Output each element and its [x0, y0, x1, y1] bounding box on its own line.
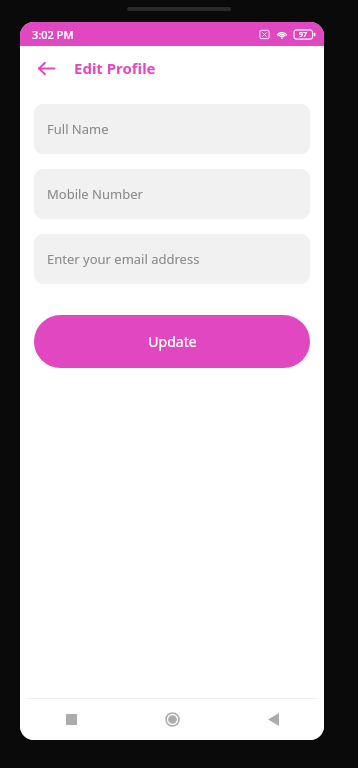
button[interactable]: Back [28, 50, 64, 86]
staticText: Edit Profile [74, 58, 156, 78]
staticText: 3:02 PM [32, 27, 74, 42]
button[interactable]: Home [122, 699, 223, 740]
button[interactable]: Mobile Number [34, 169, 310, 219]
button[interactable]: Recents [20, 699, 122, 740]
button[interactable]: Enter your email address [34, 234, 310, 284]
staticText: Mobile Number [47, 185, 143, 203]
button[interactable]: Full Name [34, 104, 310, 154]
staticText: Update [148, 332, 197, 351]
button[interactable]: Back [223, 699, 324, 740]
staticText: 97 [299, 30, 308, 40]
staticText: Enter your email address [47, 250, 200, 268]
staticText: Full Name [47, 120, 109, 138]
button[interactable]: Update [34, 315, 310, 368]
